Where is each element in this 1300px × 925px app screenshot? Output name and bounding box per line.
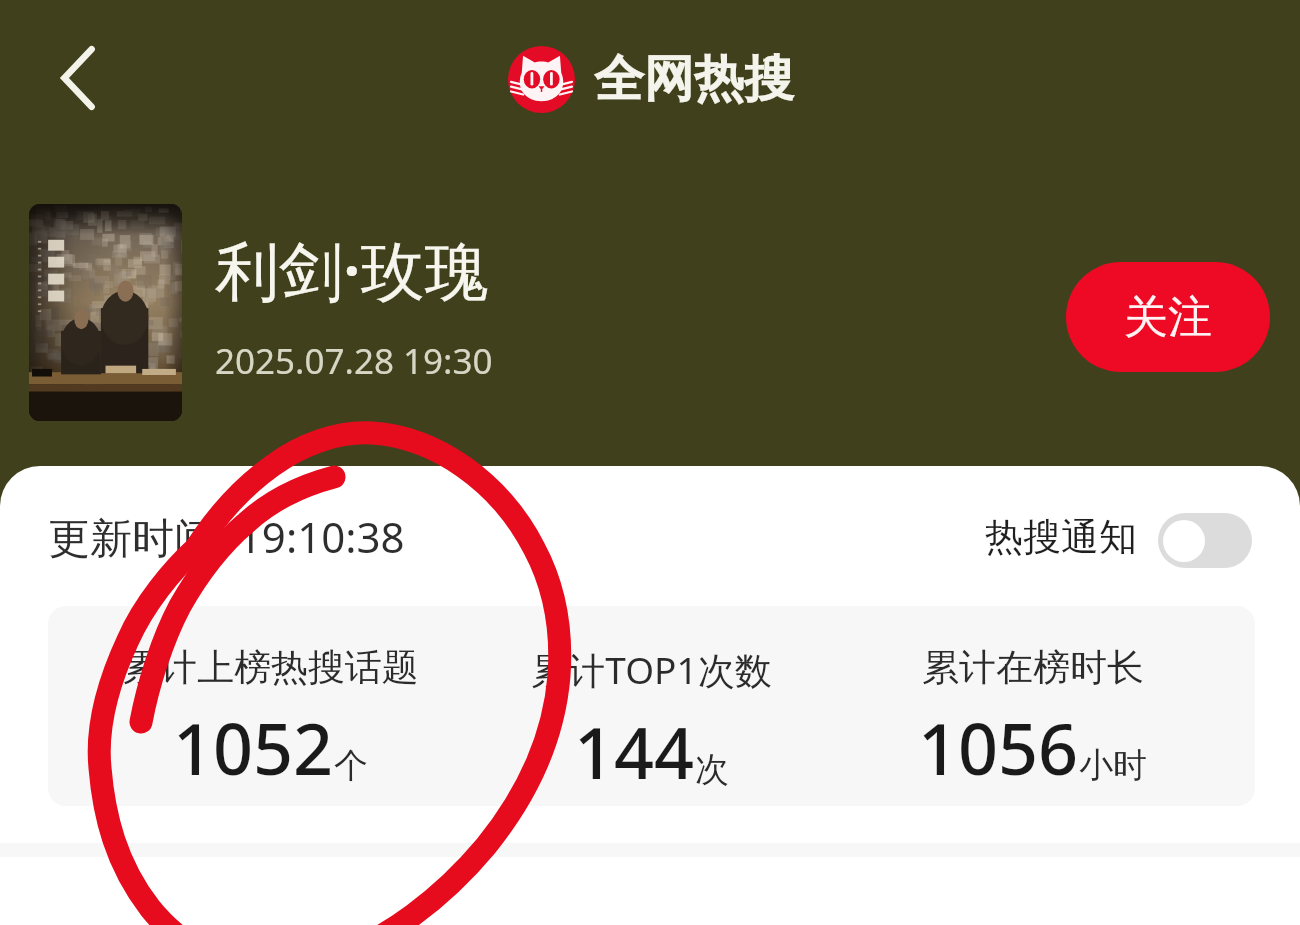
button[interactable]: 利剑·玫瑰 xyxy=(29,204,1029,421)
staticText: 144 xyxy=(574,704,695,799)
staticText: 更新时间 19:10:38 xyxy=(48,508,405,565)
staticText: 累计TOP1次数 xyxy=(531,644,772,695)
staticText: 累计在榜时长 xyxy=(922,644,1144,691)
button[interactable]: 热搜通知 xyxy=(985,509,1252,564)
staticText: 次 xyxy=(695,748,729,791)
button[interactable]: 关注 xyxy=(1066,262,1270,372)
staticText: 热搜通知 xyxy=(985,513,1137,561)
staticText: 1052 xyxy=(173,700,334,795)
staticText: 小时 xyxy=(1079,744,1147,787)
staticText: 个 xyxy=(334,744,368,787)
staticText: 利剑·玫瑰 xyxy=(215,226,489,313)
staticText: 关注 xyxy=(1124,290,1212,345)
button[interactable]: Back xyxy=(40,40,116,116)
staticText: 累计上榜热搜话题 xyxy=(123,644,419,691)
staticText: 1056 xyxy=(918,700,1079,795)
staticText: 全网热搜 xyxy=(594,48,794,111)
staticText: 2025.07.28 19:30 xyxy=(215,337,493,385)
